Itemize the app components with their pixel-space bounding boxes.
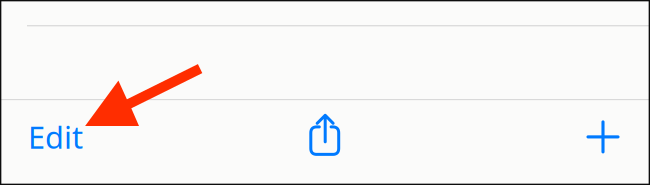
staticText: Edit (28, 116, 83, 157)
button[interactable]: Share (293, 100, 357, 173)
button[interactable]: Add (571, 100, 635, 173)
button[interactable]: Edit (28, 100, 100, 173)
